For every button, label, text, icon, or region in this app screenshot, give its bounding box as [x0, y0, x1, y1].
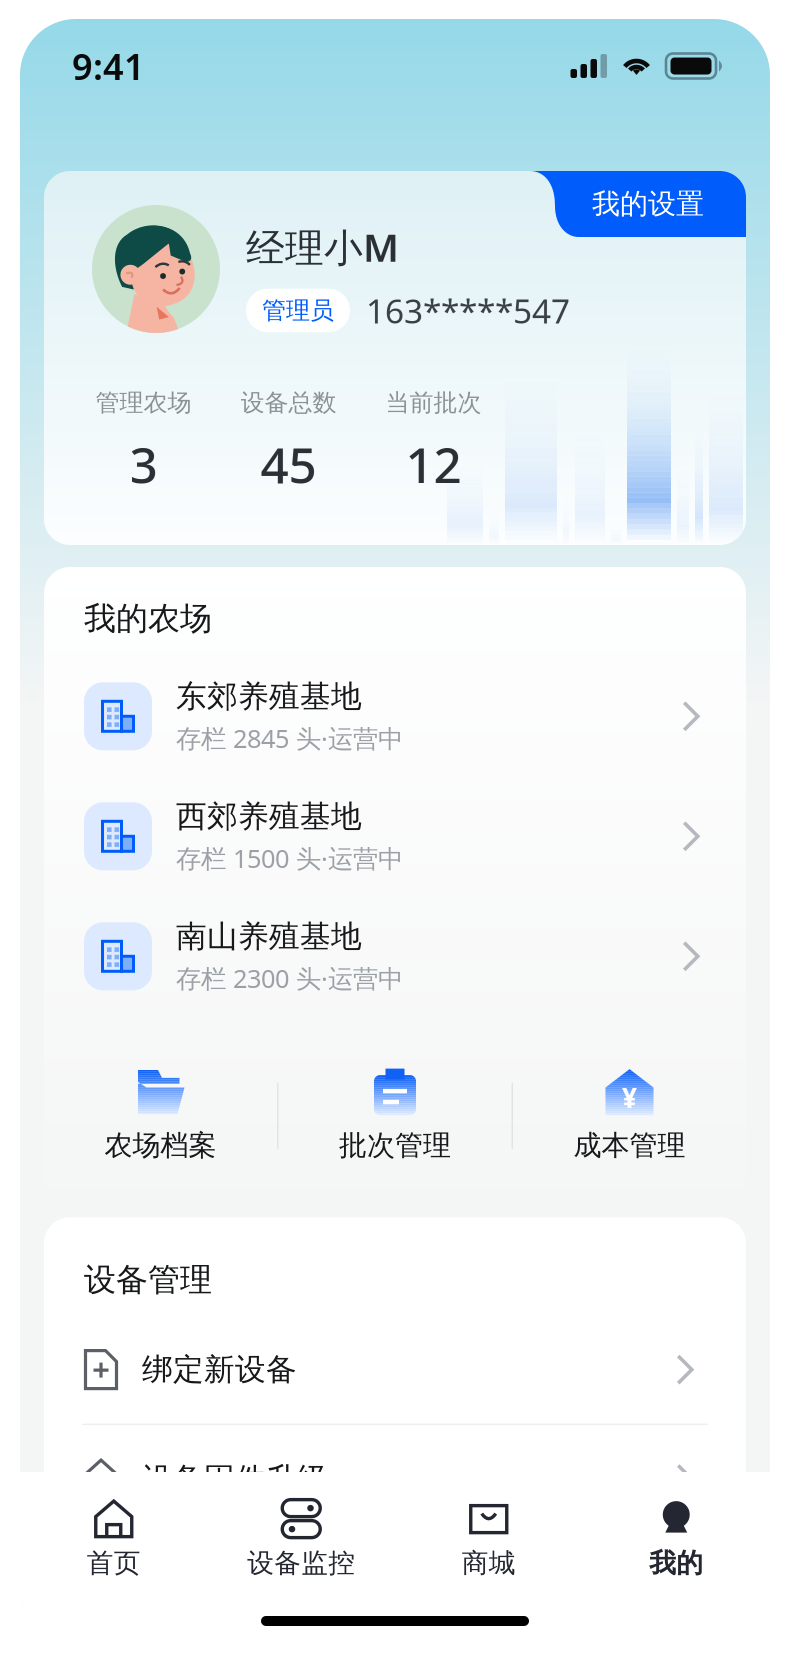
staticText: 东郊养殖基地	[176, 678, 362, 715]
button[interactable]: 西郊养殖基地	[44, 776, 746, 896]
staticText: 存栏 2845 头·运营中	[176, 721, 403, 755]
staticText: 管理农场	[95, 388, 191, 417]
staticText: 我的农场	[84, 599, 212, 638]
staticText: 绑定新设备	[142, 1351, 297, 1388]
staticText: 我的设置	[592, 187, 704, 221]
button[interactable]: 南山养殖基地	[44, 896, 746, 1016]
button[interactable]: 我的设置	[530, 171, 746, 237]
staticText: 南山养殖基地	[176, 918, 362, 955]
staticText: 经理小M	[246, 221, 399, 272]
staticText: 163*****547	[366, 288, 570, 333]
staticText: 批次管理	[339, 1128, 451, 1162]
staticText: 设备监控	[247, 1547, 355, 1579]
staticText: 首页	[87, 1547, 141, 1579]
button[interactable]: 首页	[20, 1499, 207, 1579]
staticText: 设备总数	[240, 388, 336, 417]
button[interactable]: 商城	[395, 1499, 582, 1579]
staticText: 管理员	[262, 296, 334, 325]
staticText: ¥	[621, 1078, 637, 1116]
staticText: 45	[260, 431, 316, 497]
staticText: 存栏 1500 头·运营中	[176, 841, 403, 875]
staticText: 12	[405, 431, 461, 497]
staticText: 西郊养殖基地	[176, 798, 362, 835]
button[interactable]: 我的	[582, 1499, 770, 1579]
button[interactable]: 设备监控	[207, 1499, 395, 1579]
staticText: 商城	[462, 1547, 516, 1579]
staticText: 农场档案	[104, 1128, 216, 1162]
staticText: 设备管理	[84, 1260, 212, 1300]
button[interactable]: 农场档案	[44, 1069, 277, 1162]
button[interactable]: 绑定新设备	[44, 1316, 746, 1424]
staticText: 设备固件升级	[142, 1460, 328, 1498]
button[interactable]: 批次管理	[278, 1069, 511, 1162]
button[interactable]: 东郊养殖基地	[44, 656, 746, 776]
button[interactable]: 设备固件升级	[44, 1425, 746, 1533]
button[interactable]: 管理员	[246, 289, 350, 332]
staticText: 成本管理	[573, 1128, 685, 1162]
staticText: 9:41	[72, 42, 145, 90]
staticText: 存栏 2300 头·运营中	[176, 961, 403, 995]
staticText: 3	[129, 431, 157, 497]
button[interactable]: ¥	[513, 1069, 746, 1162]
staticText: 当前批次	[385, 388, 481, 417]
staticText: 我的	[649, 1547, 703, 1579]
